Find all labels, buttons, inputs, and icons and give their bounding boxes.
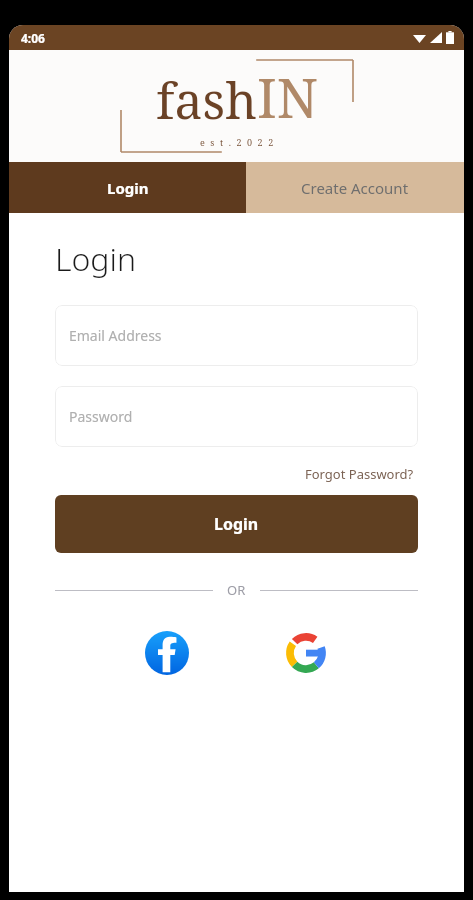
staticText: Login (214, 513, 259, 535)
staticText: Password (69, 407, 133, 426)
staticText: OR (227, 581, 246, 599)
button[interactable]: Login (55, 495, 418, 553)
staticText: e s t . 2 0 2 2 (200, 136, 275, 148)
staticText: Login (107, 178, 149, 198)
button[interactable]: Sign in with Facebook (139, 625, 195, 681)
button[interactable]: Create Account (246, 162, 464, 213)
staticText: Create Account (301, 178, 409, 198)
button[interactable]: Password (55, 386, 418, 447)
staticText: IN (257, 60, 319, 134)
button[interactable]: Login (9, 162, 246, 213)
button[interactable]: Forgot Password? (301, 461, 418, 487)
staticText: 4:06 (21, 30, 45, 46)
staticText: fash (156, 66, 257, 134)
button[interactable]: Email Address (55, 305, 418, 366)
staticText: Forgot Password? (305, 465, 414, 483)
staticText: Login (55, 237, 136, 281)
staticText: Email Address (69, 326, 162, 345)
button[interactable]: Sign in with Google (278, 625, 334, 681)
